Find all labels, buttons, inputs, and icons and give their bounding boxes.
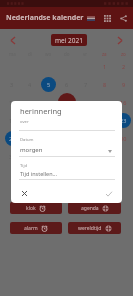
- button[interactable]: 10: [3, 93, 21, 111]
- staticText: zo: [121, 51, 126, 57]
- button[interactable]: [21, 147, 39, 165]
- staticText: over: [20, 119, 29, 125]
- button[interactable]: 31: [3, 147, 21, 165]
- staticText: 9: [122, 81, 126, 88]
- staticText: 4: [28, 81, 32, 88]
- staticText: alarm: [24, 225, 38, 232]
- staticText: 23: [120, 117, 127, 124]
- button[interactable]: 11: [21, 93, 39, 111]
- button[interactable]: [114, 147, 133, 165]
- button[interactable]: 18: [21, 111, 39, 129]
- staticText: morgen: [20, 146, 43, 154]
- button[interactable]: 5: [39, 75, 57, 93]
- button[interactable]: 29: [95, 129, 114, 147]
- button[interactable]: Cancel: [17, 186, 32, 201]
- button[interactable]: Grid view: [99, 10, 115, 26]
- button[interactable]: [39, 147, 57, 165]
- button[interactable]: 14: [76, 93, 95, 111]
- staticText: 17: [9, 117, 16, 124]
- staticText: za: [102, 51, 107, 57]
- button[interactable]: [57, 147, 76, 165]
- staticText: 30: [120, 135, 127, 142]
- button[interactable]: Confirm: [101, 186, 116, 201]
- button[interactable]: 15: [95, 93, 114, 111]
- button[interactable]: Previous month: [6, 33, 20, 47]
- button[interactable]: 20: [57, 111, 76, 129]
- button[interactable]: mei 2021: [51, 34, 87, 46]
- button[interactable]: 28: [76, 129, 95, 147]
- button[interactable]: 30: [114, 129, 133, 147]
- button[interactable]: 25: [21, 129, 39, 147]
- staticText: 11: [27, 99, 34, 106]
- button[interactable]: [76, 147, 95, 165]
- staticText: 8: [103, 81, 107, 88]
- button[interactable]: Datum: [11, 134, 122, 156]
- staticText: Tijd instellen...: [20, 170, 58, 177]
- button[interactable]: klok: [10, 202, 62, 214]
- button[interactable]: 26: [39, 129, 57, 147]
- staticText: 24: [9, 135, 16, 142]
- button[interactable]: 23: [114, 111, 133, 129]
- button[interactable]: 19: [39, 111, 57, 129]
- staticText: 12: [45, 99, 52, 106]
- button[interactable]: over: [11, 115, 122, 130]
- button[interactable]: Tijd: [11, 160, 122, 179]
- staticText: 13: [64, 99, 71, 106]
- button[interactable]: 13: [57, 93, 76, 111]
- staticText: 25: [27, 135, 34, 142]
- staticText: 2: [122, 63, 126, 70]
- button[interactable]: [95, 147, 114, 165]
- button[interactable]: 24: [3, 129, 21, 147]
- staticText: mei 2021: [55, 36, 83, 45]
- button[interactable]: Next month: [113, 33, 127, 47]
- button[interactable]: 12: [39, 93, 57, 111]
- staticText: 1: [103, 63, 107, 70]
- button[interactable]: 17: [3, 111, 21, 129]
- staticText: Nederlandse kalender: [6, 13, 84, 23]
- button[interactable]: Share: [115, 10, 131, 26]
- staticText: 6: [65, 81, 69, 88]
- staticText: klok: [26, 205, 36, 212]
- staticText: 31: [9, 153, 16, 160]
- button[interactable]: alarm: [10, 222, 62, 234]
- button[interactable]: 16: [114, 93, 133, 111]
- staticText: Tijd: [20, 163, 28, 169]
- staticText: 16: [120, 99, 127, 106]
- staticText: 15: [101, 99, 108, 106]
- button[interactable]: 27: [57, 129, 76, 147]
- button[interactable]: agenda: [68, 202, 121, 214]
- staticText: 10: [9, 99, 16, 106]
- staticText: 5: [47, 81, 51, 88]
- button[interactable]: wereldtijd: [68, 222, 121, 234]
- button[interactable]: Language: [86, 13, 96, 23]
- staticText: agenda: [81, 205, 99, 212]
